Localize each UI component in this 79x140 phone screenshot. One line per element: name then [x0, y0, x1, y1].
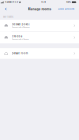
button[interactable]: Back: [0, 4, 10, 14]
staticText: T-Mobile CZ: [4, 1, 19, 4]
button[interactable]: Chodba: [0, 32, 79, 43]
staticText: Manage rooms: [27, 7, 51, 11]
staticText: Obývací pokoj: [12, 23, 30, 26]
button[interactable]: Obývací pokoj: [0, 20, 79, 31]
button[interactable]: My rooms: [0, 14, 79, 20]
staticText: 100%: [66, 1, 72, 4]
staticText: Connected to 1 device: [12, 38, 29, 40]
staticText: 13:41: [41, 1, 46, 4]
staticText: Chodba: [12, 35, 22, 38]
staticText: Add a room: [58, 7, 74, 11]
button[interactable]: Default room: [0, 48, 79, 59]
staticText: Default room: [12, 52, 28, 55]
staticText: Connected to 3 devices: [12, 26, 30, 28]
staticText: My rooms: [3, 16, 13, 18]
button[interactable]: Add a room: [58, 4, 79, 14]
